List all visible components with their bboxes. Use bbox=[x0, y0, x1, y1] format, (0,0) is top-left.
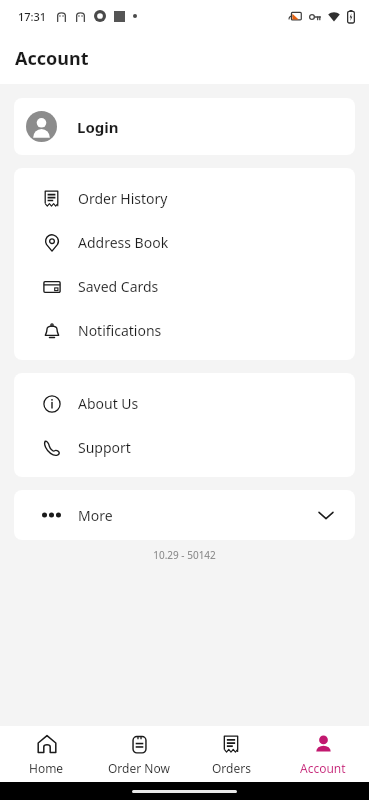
staticText: Saved Cards bbox=[78, 277, 159, 296]
button[interactable]: Saved Cards bbox=[14, 264, 355, 308]
button[interactable]: About Us bbox=[14, 381, 355, 425]
button[interactable]: Login bbox=[14, 98, 355, 155]
button[interactable]: Notifications bbox=[14, 308, 355, 352]
button[interactable]: Account bbox=[277, 726, 369, 782]
staticText: Address Book bbox=[78, 233, 169, 252]
staticText: Order Now bbox=[108, 760, 170, 776]
staticText: Support bbox=[78, 438, 131, 457]
staticText: Orders bbox=[212, 760, 251, 776]
staticText: About Us bbox=[78, 394, 139, 413]
staticText: Order History bbox=[78, 189, 168, 208]
button[interactable]: Orders bbox=[185, 726, 277, 782]
button[interactable]: More bbox=[14, 490, 355, 540]
staticText: Notifications bbox=[78, 321, 162, 340]
staticText: More bbox=[78, 506, 113, 525]
button[interactable]: Support bbox=[14, 425, 355, 469]
staticText: Home bbox=[29, 760, 64, 776]
button[interactable]: Home bbox=[0, 726, 93, 782]
button[interactable]: Order Now bbox=[93, 726, 185, 782]
button[interactable]: Address Book bbox=[14, 220, 355, 264]
staticText: 17:31 bbox=[18, 9, 47, 24]
staticText: Account bbox=[300, 760, 346, 776]
staticText: Login bbox=[77, 117, 119, 137]
staticText: 10.29 - 50142 bbox=[0, 548, 369, 562]
button[interactable]: Order History bbox=[14, 176, 355, 220]
staticText: Account bbox=[15, 46, 89, 71]
